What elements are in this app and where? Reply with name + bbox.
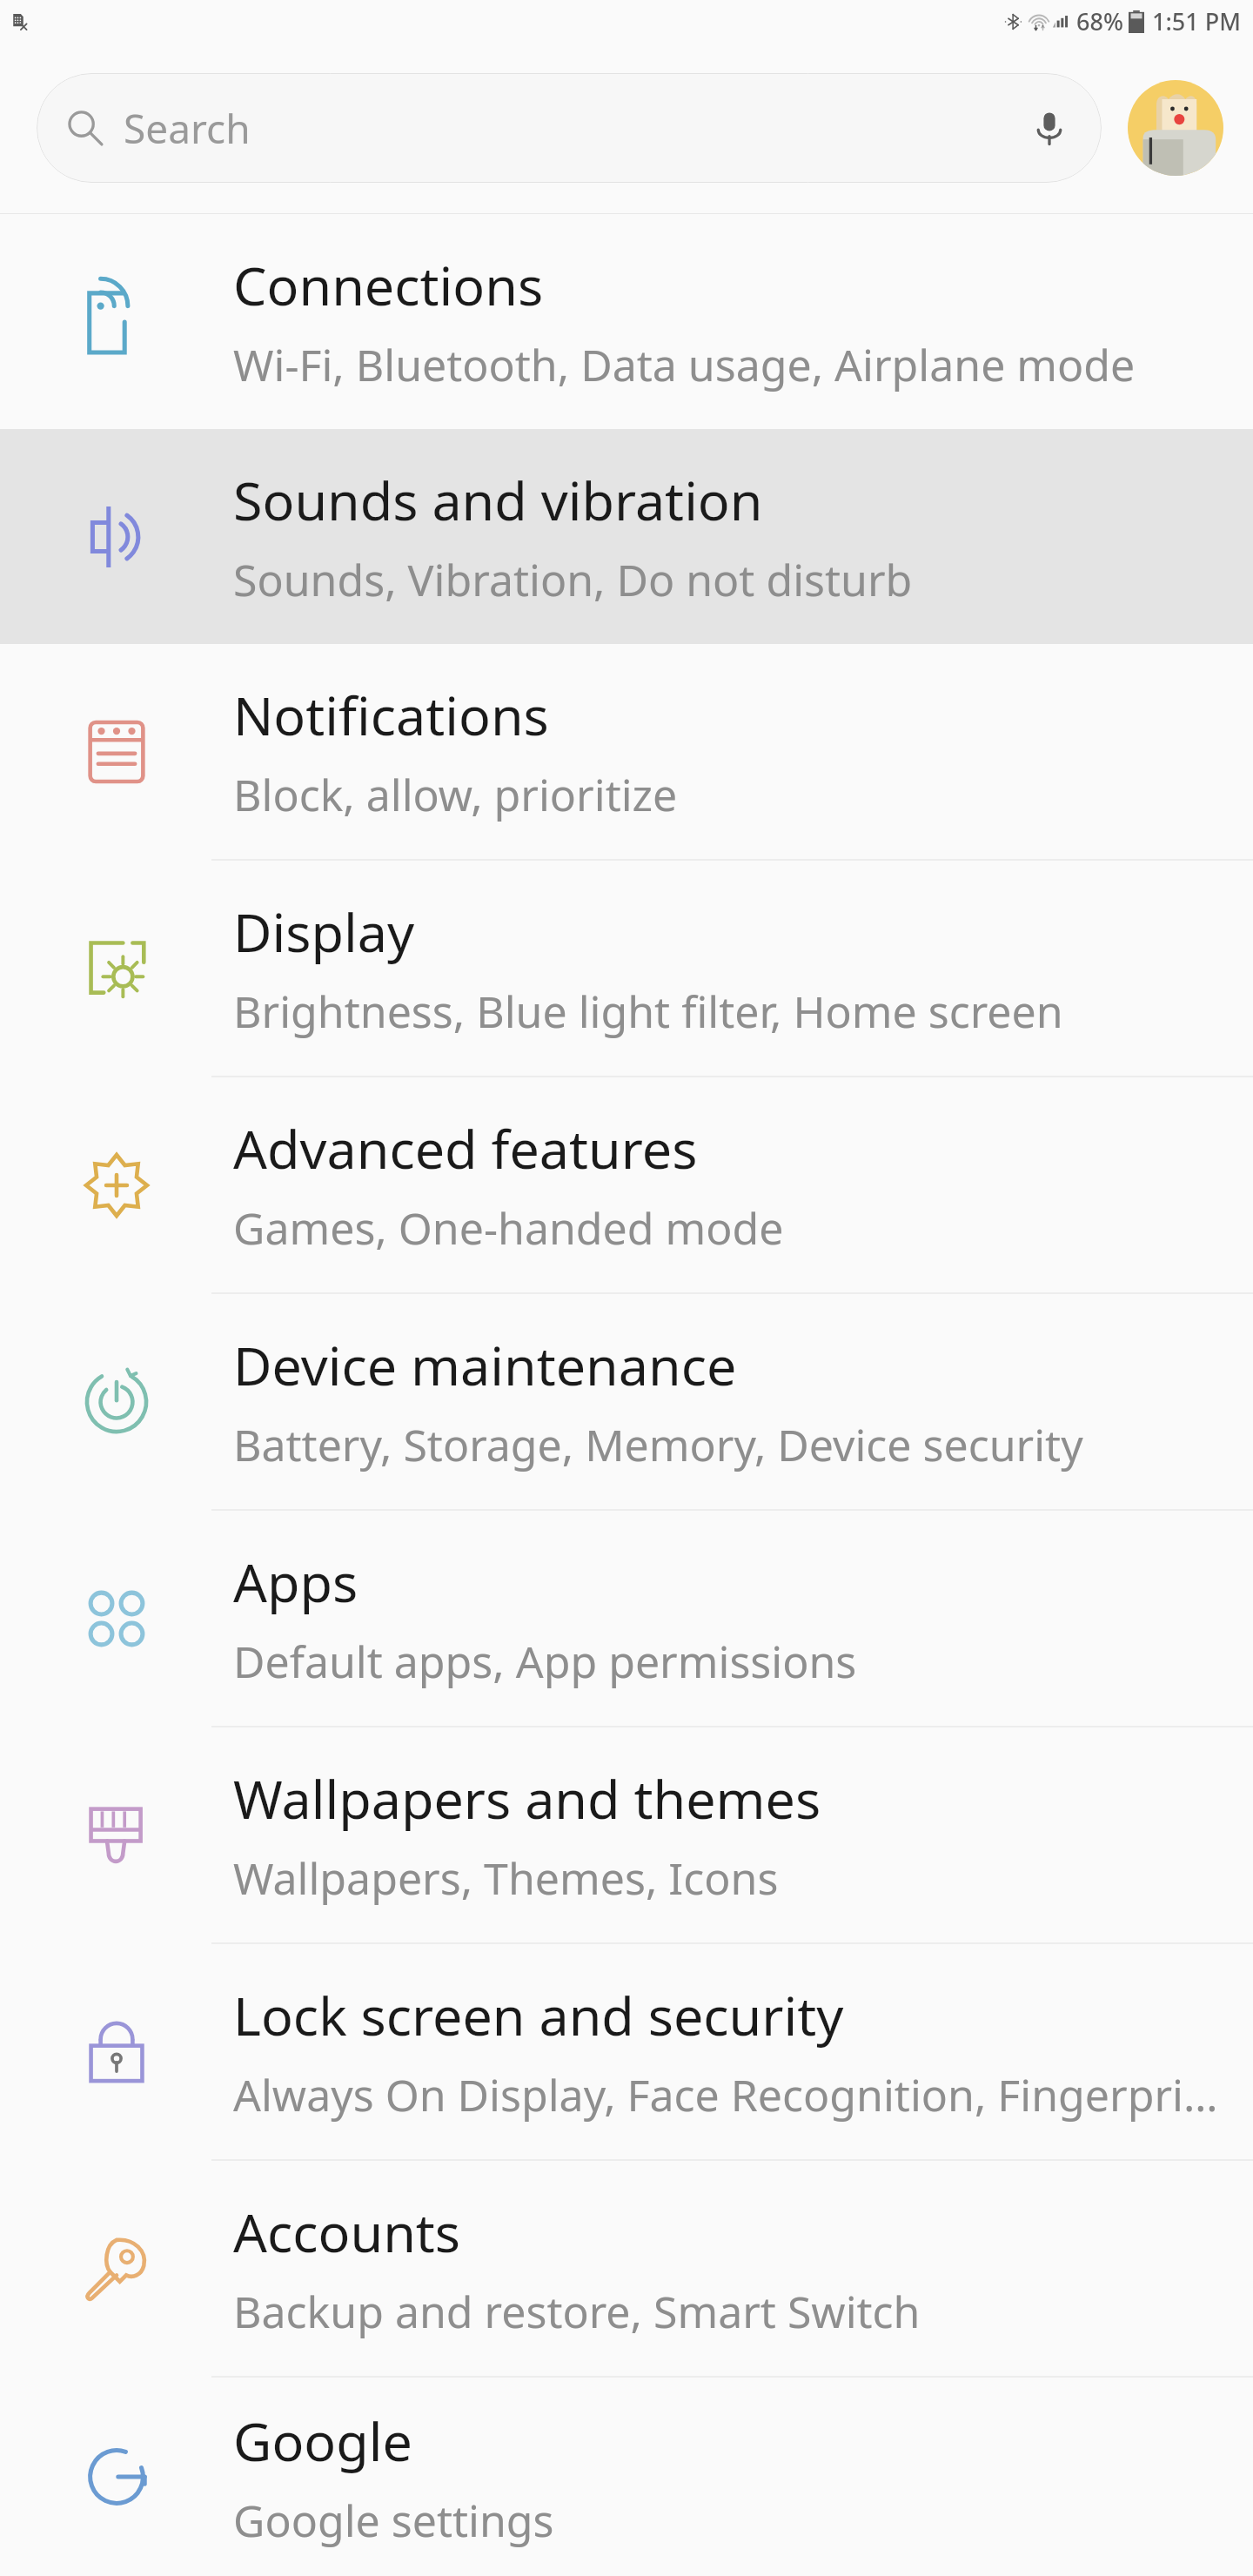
button[interactable]: Connections [0, 214, 1253, 429]
button[interactable]: Advanced features [0, 1077, 1253, 1292]
staticText: Games, One-handed mode [233, 1198, 784, 1258]
button[interactable]: Search [37, 73, 1102, 183]
button[interactable]: Device maintenance [0, 1294, 1253, 1509]
button[interactable]: Account [1128, 80, 1223, 176]
staticText: Brightness, Blue light filter, Home scre… [233, 982, 1063, 1041]
staticText: Sounds and vibration [233, 464, 763, 536]
button[interactable]: Lock screen and security [0, 1944, 1253, 2159]
staticText: Wallpapers, Themes, Icons [233, 1848, 779, 1908]
staticText: Always On Display, Face Recognition, Fin… [233, 2065, 1218, 2124]
staticText: Sounds, Vibration, Do not disturb [233, 550, 913, 609]
button[interactable]: Google [0, 2378, 1253, 2576]
staticText: Accounts [233, 2196, 461, 2268]
staticText: Lock screen and security [233, 1979, 844, 2051]
staticText: Advanced features [233, 1112, 698, 1184]
staticText: Default apps, App permissions [233, 1632, 857, 1691]
button[interactable]: Voice search [1023, 102, 1075, 154]
button[interactable]: Accounts [0, 2161, 1253, 2376]
staticText: Wi-Fi, Bluetooth, Data usage, Airplane m… [233, 335, 1136, 394]
staticText: Display [233, 896, 415, 968]
staticText: Search [124, 101, 251, 156]
staticText: Battery, Storage, Memory, Device securit… [233, 1415, 1083, 1474]
staticText: 1:51 PM [1152, 5, 1241, 37]
button[interactable]: Display [0, 861, 1253, 1076]
button[interactable]: Notifications [0, 644, 1253, 859]
staticText: Device maintenance [233, 1329, 737, 1401]
staticText: Connections [233, 249, 544, 321]
staticText: Google settings [233, 2491, 554, 2550]
staticText: Block, allow, prioritize [233, 765, 678, 824]
button[interactable]: Wallpapers and themes [0, 1727, 1253, 1942]
staticText: Backup and restore, Smart Switch [233, 2282, 921, 2341]
button[interactable]: Apps [0, 1511, 1253, 1726]
staticText: Google [233, 2405, 412, 2477]
staticText: Notifications [233, 679, 549, 751]
button[interactable]: Sounds and vibration [0, 429, 1253, 644]
staticText: Apps [233, 1546, 358, 1618]
staticText: Wallpapers and themes [233, 1762, 821, 1835]
staticText: 68% [1076, 5, 1123, 37]
